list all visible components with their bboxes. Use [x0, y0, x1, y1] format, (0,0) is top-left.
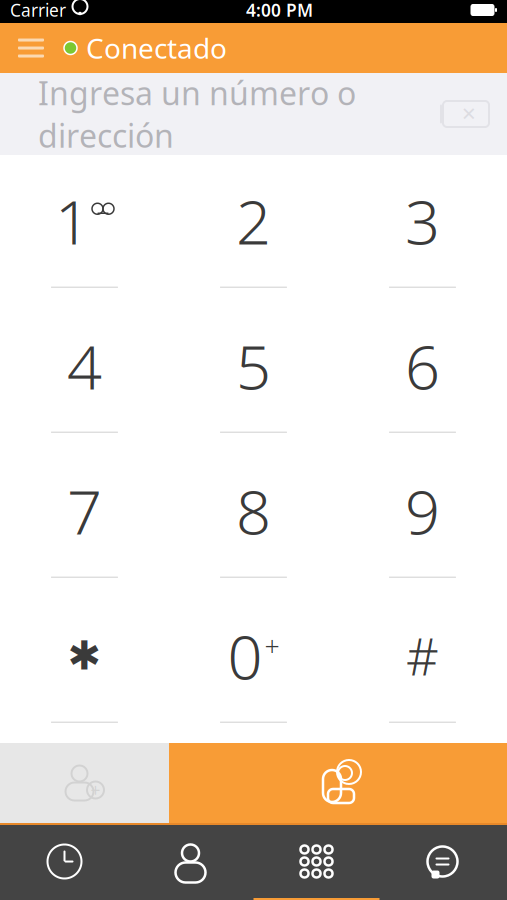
- button[interactable]: Recents: [1, 825, 127, 900]
- staticText: Ingresa un número o dirección: [38, 71, 356, 156]
- button[interactable]: Add contact: [0, 743, 169, 823]
- staticText: 1: [55, 180, 90, 261]
- staticText: 0: [227, 615, 262, 696]
- staticText: 4: [67, 325, 102, 406]
- button[interactable]: #: [338, 590, 507, 735]
- staticText: +: [264, 628, 279, 663]
- button[interactable]: 3: [338, 155, 507, 300]
- staticText: 7: [67, 470, 102, 551]
- staticText: 5: [236, 325, 271, 406]
- button[interactable]: 9: [338, 445, 507, 590]
- staticText: 8: [236, 470, 271, 551]
- button[interactable]: Contacts: [127, 825, 253, 900]
- staticText: #: [406, 622, 439, 689]
- button[interactable]: ✱: [0, 590, 169, 735]
- button[interactable]: 6: [338, 300, 507, 445]
- button[interactable]: 7: [0, 445, 169, 590]
- staticText: 4:00 PM: [246, 0, 313, 21]
- button[interactable]: Menu: [8, 24, 54, 72]
- button[interactable]: Call: [169, 743, 507, 823]
- button[interactable]: Delete: [435, 94, 507, 134]
- button[interactable]: 2: [169, 155, 338, 300]
- staticText: ✕: [461, 103, 477, 125]
- staticText: 9: [405, 470, 440, 551]
- staticText: +: [90, 778, 100, 801]
- button[interactable]: Keypad: [253, 825, 379, 900]
- staticText: Carrier: [10, 0, 66, 21]
- staticText: 6: [405, 325, 440, 406]
- button[interactable]: Conectado: [54, 24, 237, 72]
- button[interactable]: 4: [0, 300, 169, 445]
- button[interactable]: 5: [169, 300, 338, 445]
- button[interactable]: Messages: [379, 825, 505, 900]
- staticText: ✱: [67, 633, 101, 678]
- staticText: 3: [405, 180, 440, 261]
- staticText: Conectado: [86, 29, 227, 67]
- button[interactable]: 8: [169, 445, 338, 590]
- button[interactable]: 0: [169, 590, 338, 735]
- staticText: 2: [236, 180, 271, 261]
- button[interactable]: 1: [0, 155, 169, 300]
